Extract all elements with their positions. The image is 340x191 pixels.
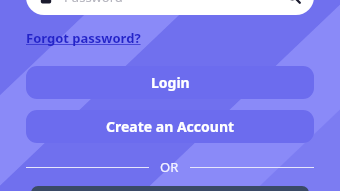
button[interactable]: Password: [26, 0, 314, 15]
button[interactable]: Show password: [286, 0, 301, 4]
button[interactable]: Login: [26, 66, 314, 99]
button[interactable]: [31, 186, 309, 191]
button[interactable]: Create an Account: [26, 110, 314, 143]
button[interactable]: Forgot password?: [26, 29, 141, 47]
staticText: Login: [151, 73, 190, 92]
staticText: Password: [64, 0, 123, 6]
staticText: OR: [160, 158, 179, 176]
staticText: Forgot password?: [26, 29, 141, 47]
staticText: Create an Account: [106, 117, 235, 136]
